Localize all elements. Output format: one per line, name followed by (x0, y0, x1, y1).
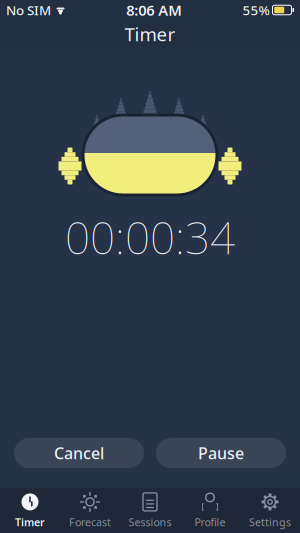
staticText: Timer (15, 515, 45, 529)
button[interactable]: Cancel (14, 438, 144, 468)
button[interactable]: Pause (156, 438, 286, 468)
staticText: 55% (242, 1, 269, 19)
staticText: 8:06 AM (126, 0, 182, 20)
staticText: Profile (194, 515, 225, 529)
button[interactable]: Timer (0, 20, 300, 48)
staticText: Sessions (128, 515, 171, 529)
staticText: Cancel (54, 442, 104, 464)
staticText: Forecast (69, 515, 111, 529)
staticText: Timer (124, 22, 175, 46)
staticText: 00:00:34 (65, 208, 235, 266)
button[interactable]: Timer (0, 489, 60, 532)
button[interactable]: Sessions (120, 489, 180, 532)
button[interactable]: Profile (180, 489, 240, 532)
button[interactable]: Settings (240, 489, 300, 532)
staticText: Settings (249, 515, 291, 529)
staticText: Pause (198, 442, 244, 464)
staticText: No SIM (6, 1, 51, 19)
button[interactable]: Forecast (60, 489, 120, 532)
